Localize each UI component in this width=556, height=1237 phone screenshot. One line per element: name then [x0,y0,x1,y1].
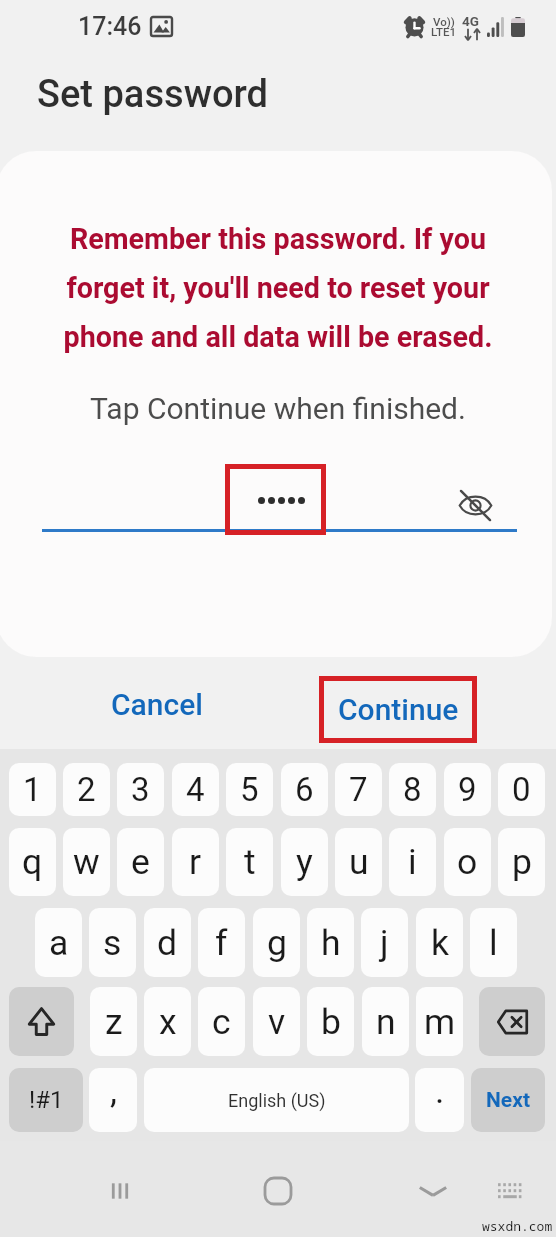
button[interactable]: Change keyboard [486,1167,534,1215]
staticText: 3 [131,770,150,809]
button[interactable]: Next [471,1068,545,1132]
staticText: LTE1 [431,25,457,38]
staticText: 17:46 [78,12,142,41]
staticText: s [103,922,122,964]
staticText: g [267,922,287,964]
staticText: 8 [403,770,422,809]
button[interactable]: j [361,908,408,977]
button[interactable]: Cancel [90,672,224,736]
button[interactable]: 8 [389,763,436,816]
staticText: k [431,922,449,964]
staticText: q [22,841,43,883]
button[interactable]: o [444,828,491,896]
staticText: Remember this password. If you forget it… [58,222,498,354]
button[interactable]: r [172,828,219,896]
button[interactable]: 9 [444,763,491,816]
button[interactable]: h [307,908,354,977]
button[interactable]: u [335,828,382,896]
staticText: 7 [349,770,368,809]
button[interactable]: p [498,828,545,896]
staticText: 1 [23,770,42,809]
staticText: 4G [462,13,479,29]
button[interactable]: Show password [455,485,495,525]
button[interactable]: Backspace [479,987,545,1056]
button[interactable]: y [281,828,328,896]
staticText: o [457,841,478,883]
staticText: !#1 [29,1086,64,1114]
button[interactable]: l [470,908,517,977]
staticText: t [244,841,256,883]
staticText: l [489,922,498,964]
button[interactable]: n [362,987,409,1056]
staticText: . [435,1070,445,1112]
button[interactable]: s [89,908,136,977]
button[interactable]: 6 [281,763,328,816]
staticText: Vo)) [433,15,455,28]
button[interactable]: d [144,908,191,977]
button[interactable]: m [416,987,463,1056]
staticText: 2 [77,770,96,809]
staticText: 9 [458,770,477,809]
staticText: 0 [512,770,531,809]
button[interactable]: a [35,908,82,977]
staticText: Cancel [111,687,204,722]
button[interactable]: w [63,828,110,896]
staticText: j [380,922,389,964]
staticText: c [212,1001,231,1043]
button[interactable]: !#1 [9,1068,83,1132]
button[interactable]: k [416,908,463,977]
button[interactable]: b [307,987,354,1056]
staticText: English (US) [228,1090,326,1111]
button[interactable]: i [389,828,436,896]
staticText: d [157,922,178,964]
button[interactable]: f [198,908,245,977]
button[interactable]: v [253,987,300,1056]
staticText: Next [486,1088,530,1113]
staticText: 5 [240,770,259,809]
button[interactable]: . [415,1068,464,1132]
staticText: Set password [37,72,269,117]
staticText: f [215,922,228,964]
staticText: p [512,841,532,883]
staticText: v [268,1001,286,1043]
staticText: z [105,1001,123,1043]
button[interactable]: 5 [226,763,273,816]
button[interactable]: t [226,828,273,896]
button[interactable]: x [144,987,191,1056]
staticText: y [296,841,313,883]
button[interactable]: 3 [117,763,164,816]
button[interactable]: , [89,1068,137,1132]
button[interactable]: 1 [9,763,56,816]
button[interactable]: 7 [335,763,382,816]
staticText: 6 [295,770,314,809]
button[interactable]: Home [254,1167,302,1215]
button[interactable]: 4 [172,763,219,816]
button[interactable]: c [198,987,245,1056]
staticText: Continue [338,692,459,727]
staticText: Tap Continue when finished. [0,391,556,426]
button[interactable]: English (US) [144,1068,409,1132]
staticText: m [424,1001,456,1043]
button[interactable]: Continue [319,676,477,743]
button[interactable]: e [117,828,164,896]
staticText: b [321,1001,341,1043]
staticText: x [159,1001,177,1043]
staticText: wsxdn.com [482,1217,553,1235]
staticText: n [376,1001,396,1043]
button[interactable]: q [9,828,56,896]
staticText: w [73,841,100,883]
staticText: r [189,841,202,883]
staticText: a [49,922,69,964]
button[interactable]: Shift [9,987,74,1056]
button[interactable]: 2 [63,763,110,816]
staticText: u [349,841,369,883]
staticText: , [110,1070,117,1112]
button[interactable]: Hide keyboard [409,1167,457,1215]
staticText: 4 [186,770,205,809]
button[interactable]: 0 [498,763,545,816]
button[interactable]: Recent apps [96,1167,144,1215]
staticText: i [408,841,417,883]
staticText: e [131,841,150,883]
button[interactable]: g [253,908,300,977]
button[interactable]: z [90,987,137,1056]
